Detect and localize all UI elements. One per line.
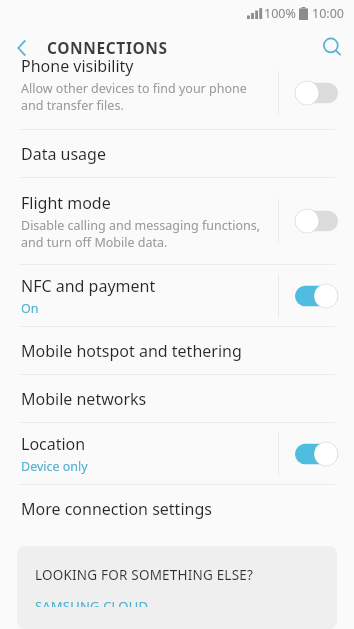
staticText: Location (21, 433, 86, 455)
button[interactable]: Search (310, 26, 354, 69)
staticText: 100% (264, 5, 296, 22)
staticText: Phone visibility (21, 55, 134, 77)
button[interactable]: Location (0, 433, 278, 475)
button[interactable]: LOOKING FOR SOMETHING ELSE? (17, 546, 337, 629)
staticText: Mobile networks (21, 388, 147, 410)
button[interactable]: More connection settings (0, 485, 354, 532)
staticText: Disable calling and messaging functions,… (21, 217, 261, 250)
button[interactable]: Location toggle (295, 442, 338, 466)
staticText: CONNECTIONS (47, 37, 168, 58)
staticText: Flight mode (21, 192, 111, 214)
button[interactable]: NFC and payment (0, 275, 278, 317)
staticText: Device only (21, 458, 88, 475)
staticText: Allow other devices to find your phone a… (21, 80, 247, 113)
staticText: NFC and payment (21, 275, 156, 297)
button[interactable]: Flight mode (0, 192, 278, 250)
staticText: SAMSUNG CLOUD (35, 597, 149, 607)
staticText: Data usage (21, 143, 106, 165)
staticText: LOOKING FOR SOMETHING ELSE? (35, 566, 254, 584)
button[interactable]: Mobile networks (0, 375, 354, 422)
button[interactable]: NFC and payment toggle (295, 284, 338, 308)
button[interactable]: Flight mode toggle (295, 209, 338, 233)
button[interactable]: Phone visibility toggle (295, 81, 338, 105)
button[interactable]: Data usage (0, 130, 354, 177)
staticText: On (21, 300, 39, 317)
button[interactable]: Back (0, 26, 44, 69)
staticText: More connection settings (21, 498, 212, 520)
button[interactable]: Mobile hotspot and tethering (0, 327, 354, 374)
staticText: 10:00 (312, 5, 344, 22)
staticText: Mobile hotspot and tethering (21, 340, 242, 362)
